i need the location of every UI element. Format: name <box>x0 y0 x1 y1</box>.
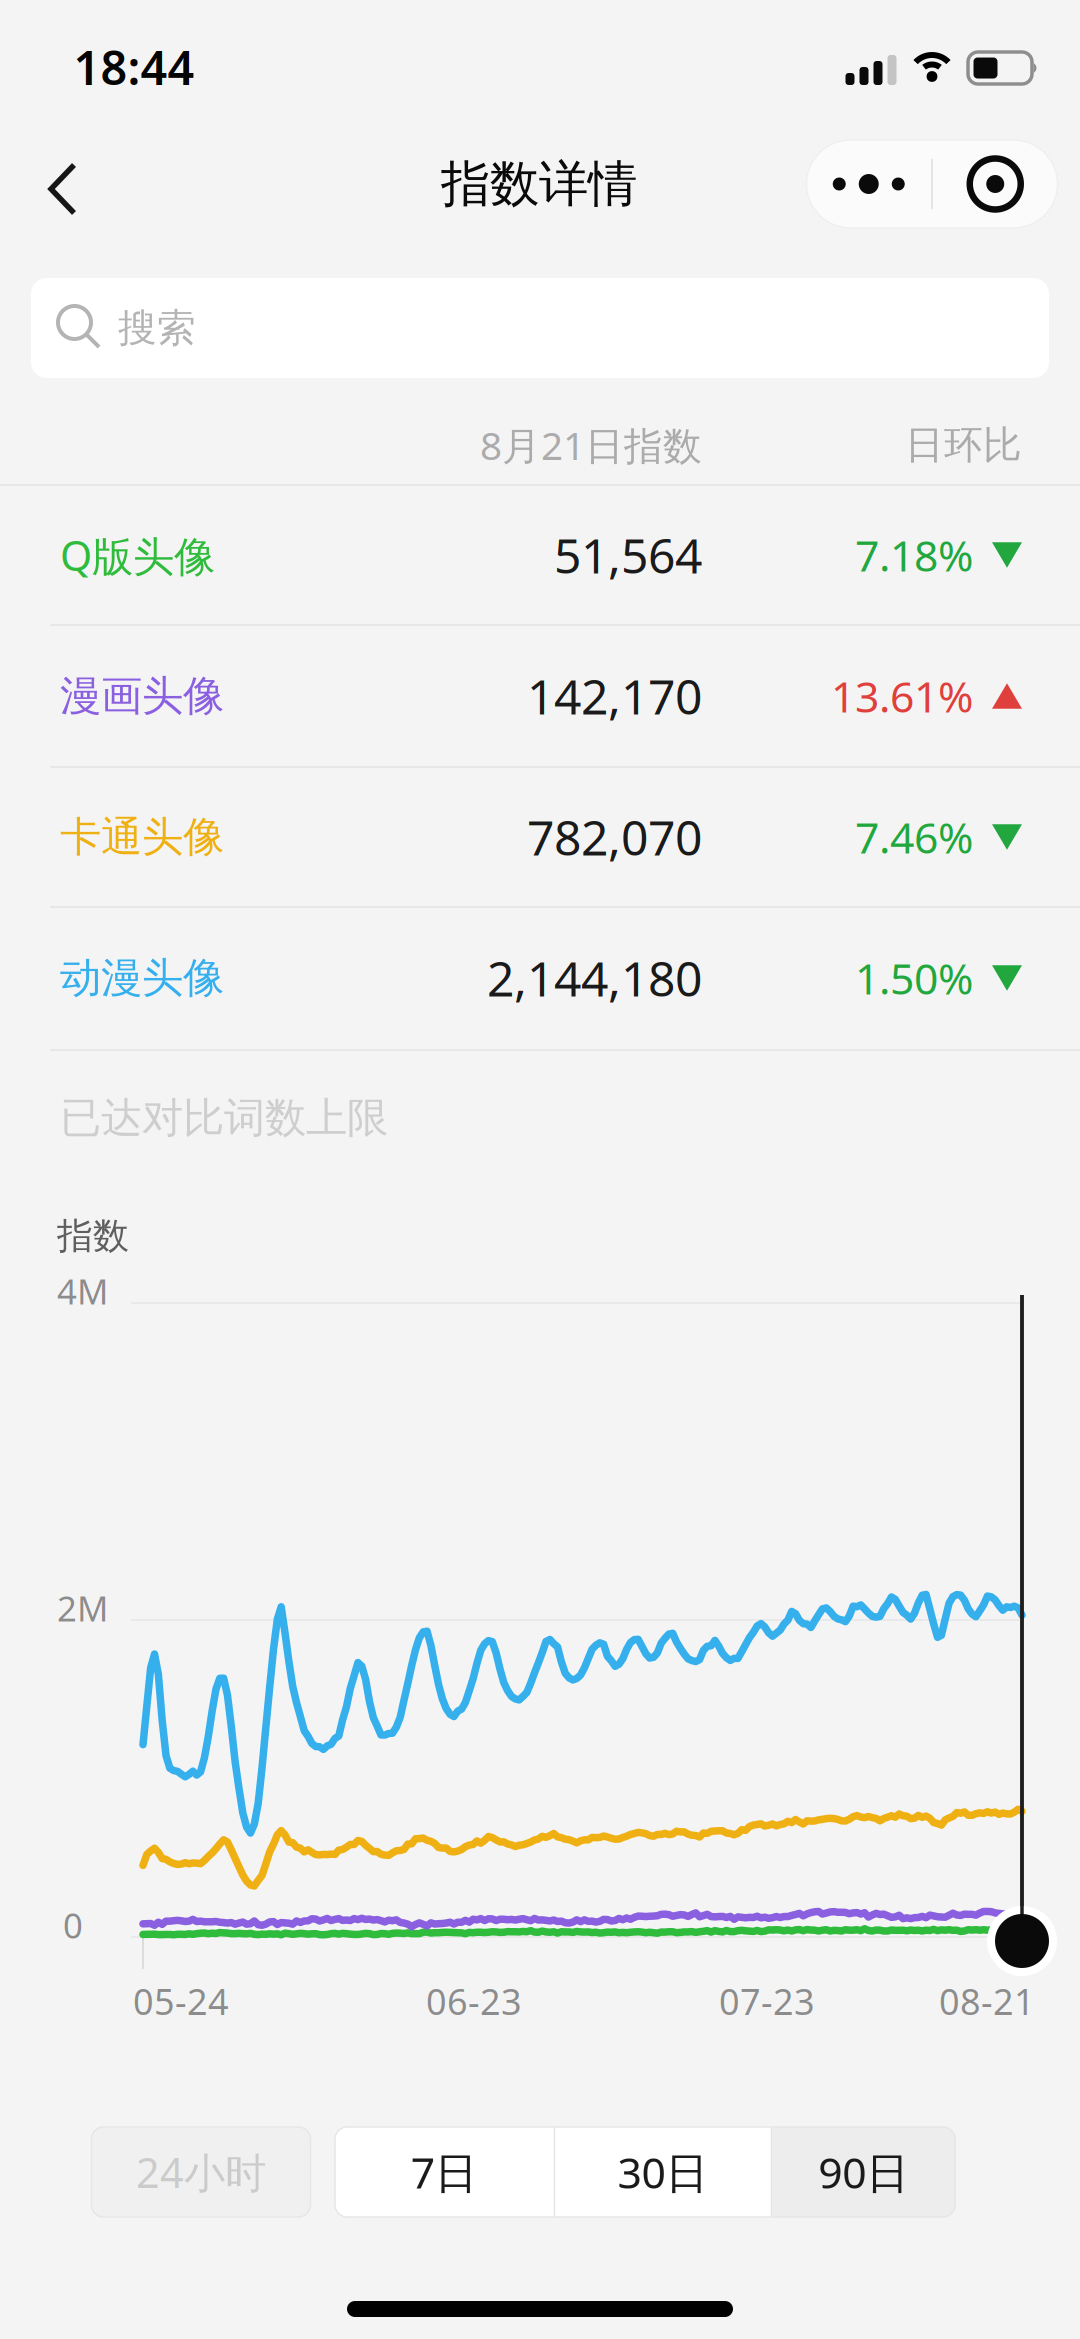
staticText: 7日 <box>411 2144 478 2200</box>
button[interactable]: Close mini program <box>933 140 1058 228</box>
button[interactable]: 卡通头像 <box>0 767 1080 907</box>
staticText: 1.50% <box>855 950 973 1006</box>
button[interactable]: Q版头像 <box>0 485 1080 625</box>
staticText: 24小时 <box>136 2145 266 2199</box>
staticText: 日环比 <box>905 421 1022 469</box>
button[interactable]: 漫画头像 <box>0 626 1080 766</box>
staticText: 已达对比词数上限 <box>60 1093 388 1143</box>
staticText: 2,144,180 <box>487 946 702 1010</box>
staticText: 13.61% <box>831 668 973 724</box>
staticText: 08-21 <box>939 1977 1035 2025</box>
staticText: 18:44 <box>73 36 194 98</box>
staticText: 07-23 <box>719 1977 815 2025</box>
staticText: 2M <box>57 1585 108 1631</box>
staticText: 90日 <box>818 2144 909 2200</box>
staticText: 指数 <box>57 1214 129 1258</box>
staticText: 782,070 <box>527 805 702 869</box>
staticText: 51,564 <box>554 523 702 587</box>
button[interactable]: 搜索 <box>31 278 1049 378</box>
staticText: 7.46% <box>855 809 973 865</box>
staticText: 卡通头像 <box>60 812 224 862</box>
button[interactable]: 7日 <box>335 2127 554 2217</box>
staticText: 8月21日指数 <box>480 419 702 471</box>
staticText: 06-23 <box>426 1977 522 2025</box>
button[interactable]: More <box>806 140 931 228</box>
staticText: 0 <box>63 1902 83 1948</box>
staticText: 7.18% <box>855 527 973 583</box>
staticText: 142,170 <box>527 664 702 728</box>
staticText: 4M <box>57 1268 108 1314</box>
button[interactable]: 24小时 <box>91 2127 310 2217</box>
staticText: 动漫头像 <box>60 953 224 1003</box>
staticText: 05-24 <box>133 1977 229 2025</box>
button[interactable]: 30日 <box>555 2127 771 2217</box>
button[interactable]: 动漫头像 <box>0 908 1080 1048</box>
staticText: Q版头像 <box>60 527 215 582</box>
button[interactable]: 90日 <box>772 2127 955 2217</box>
staticText: 漫画头像 <box>60 671 224 721</box>
staticText: 30日 <box>617 2144 708 2200</box>
staticText: 搜索 <box>118 304 196 352</box>
staticText: 指数详情 <box>441 154 637 214</box>
button[interactable]: Back <box>3 142 119 236</box>
